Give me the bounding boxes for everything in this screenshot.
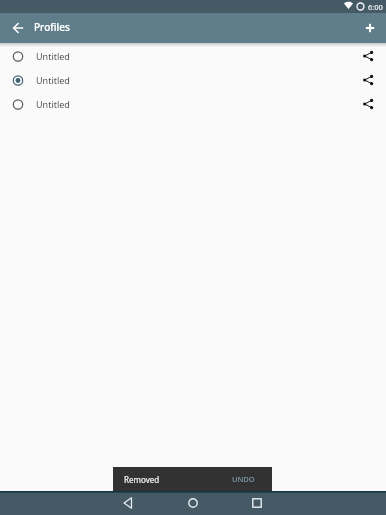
staticText: UNDO bbox=[232, 474, 255, 484]
button[interactable]: Add profile bbox=[359, 17, 381, 39]
staticText: Untitled bbox=[36, 50, 70, 62]
staticText: Profiles bbox=[34, 20, 70, 34]
button[interactable]: Untitled bbox=[0, 68, 386, 92]
staticText: Removed bbox=[124, 474, 160, 485]
button[interactable]: Share bbox=[357, 45, 379, 67]
button[interactable]: Untitled bbox=[0, 92, 386, 116]
staticText: Untitled bbox=[36, 98, 70, 110]
button[interactable]: Recent apps bbox=[247, 493, 267, 513]
button[interactable]: Share bbox=[357, 69, 379, 91]
button[interactable]: Back bbox=[118, 493, 138, 513]
button[interactable]: Share bbox=[357, 93, 379, 115]
button[interactable]: Home bbox=[183, 493, 203, 513]
button[interactable]: Untitled bbox=[0, 44, 386, 68]
staticText: Untitled bbox=[36, 74, 70, 86]
button[interactable]: Removed bbox=[113, 467, 272, 491]
button[interactable]: Navigate up bbox=[7, 17, 28, 38]
staticText: 6:00 bbox=[368, 2, 383, 12]
